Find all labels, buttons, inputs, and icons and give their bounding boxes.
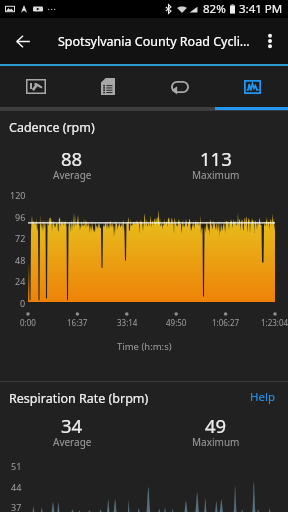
staticText: 49 — [205, 413, 227, 438]
staticText: 24 — [15, 275, 26, 287]
staticText: 82% — [203, 1, 226, 17]
staticText: 33:14 — [117, 317, 138, 328]
staticText: Maximum — [192, 168, 240, 182]
button[interactable]: Respiration Rate (brpm) — [0, 381, 288, 512]
button[interactable]: Details — [72, 66, 144, 107]
staticText: 88 — [61, 146, 83, 171]
staticText: 51 — [11, 460, 22, 472]
staticText: 3:41 PM — [239, 1, 283, 17]
staticText: 34 — [61, 413, 83, 438]
button[interactable]: More options — [258, 18, 282, 64]
staticText: Average — [53, 168, 92, 182]
staticText: 44 — [11, 481, 22, 493]
staticText: Maximum — [192, 435, 240, 449]
staticText: 0 — [20, 297, 26, 309]
staticText: 0:00 — [20, 317, 36, 328]
staticText: 1:23:04 — [261, 317, 288, 328]
staticText: Average — [53, 435, 92, 449]
staticText: 72 — [15, 232, 26, 244]
staticText: Respiration Rate (brpm) — [9, 390, 149, 407]
staticText: Cadence (rpm) — [9, 119, 95, 136]
button[interactable]: Charts — [216, 66, 288, 107]
button[interactable]: Laps — [144, 66, 216, 107]
button[interactable]: Help — [246, 385, 280, 409]
staticText: 96 — [15, 211, 26, 223]
staticText: Help — [250, 389, 276, 405]
staticText: Spotsylvania County Road Cycli… — [58, 33, 250, 50]
staticText: Time (h:m:s) — [117, 340, 172, 353]
staticText: 37 — [11, 501, 22, 512]
staticText: 1:06:27 — [212, 317, 240, 328]
staticText: 49:50 — [166, 317, 187, 328]
staticText: 48 — [15, 254, 26, 266]
button[interactable]: Back — [8, 18, 38, 64]
button[interactable]: Map — [0, 66, 72, 107]
staticText: 120 — [10, 189, 26, 201]
staticText: 16:37 — [67, 317, 88, 328]
button[interactable]: Cadence (rpm) — [0, 110, 288, 381]
staticText: 113 — [200, 146, 232, 171]
